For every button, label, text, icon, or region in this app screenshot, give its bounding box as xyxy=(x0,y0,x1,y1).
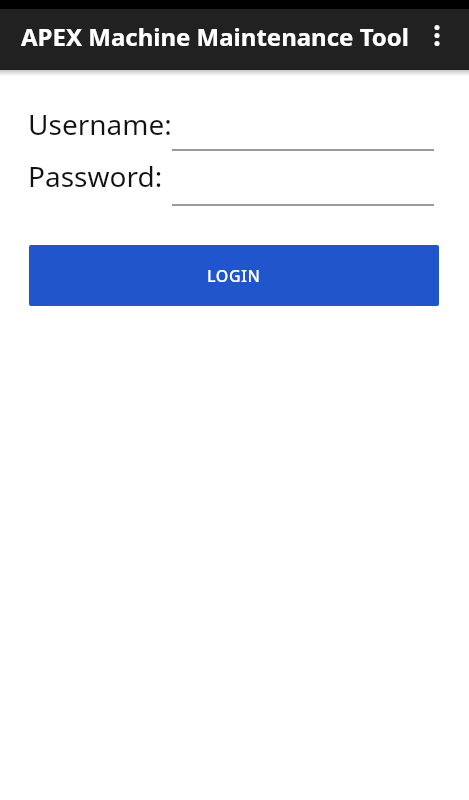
staticText: Password: xyxy=(28,157,163,195)
button[interactable]: LOGIN xyxy=(29,245,439,306)
staticText: LOGIN xyxy=(207,265,261,287)
staticText: Username: xyxy=(28,105,172,143)
button[interactable] xyxy=(172,121,434,151)
button[interactable] xyxy=(172,176,434,206)
button[interactable] xyxy=(417,20,457,60)
staticText: APEX Machine Maintenance Tool xyxy=(21,20,409,53)
